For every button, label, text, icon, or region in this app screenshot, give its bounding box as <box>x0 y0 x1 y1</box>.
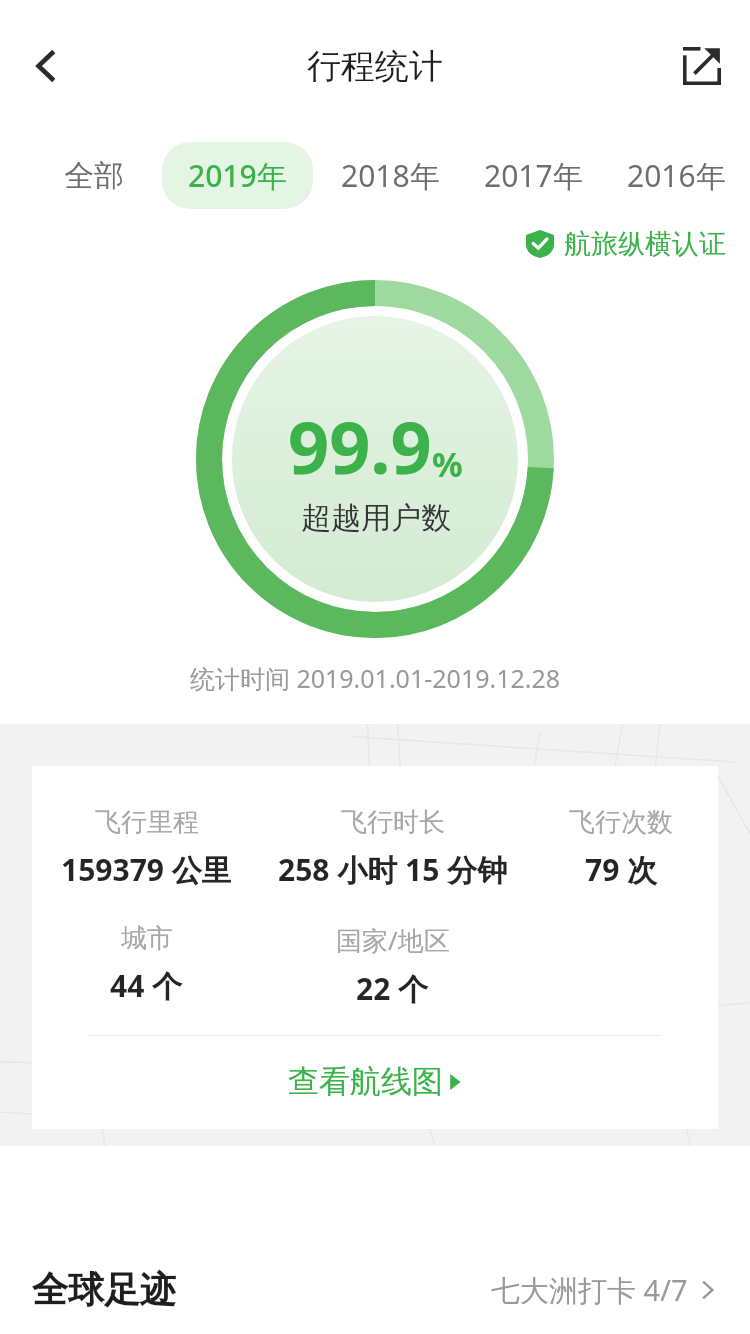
button[interactable]: 七大洲打卡 4/7 <box>491 1270 718 1310</box>
staticText: 79 次 <box>585 849 658 890</box>
staticText: 统计时间 2019.01.01-2019.12.28 <box>0 661 750 695</box>
staticText: 飞行里程 <box>95 806 199 839</box>
staticText: 44 个 <box>110 965 183 1006</box>
staticText: 飞行时长 <box>341 806 445 839</box>
staticText: 城市 <box>121 922 173 955</box>
staticText: 航旅纵横认证 <box>564 227 726 261</box>
staticText: 全球足迹 <box>32 1267 176 1312</box>
staticText: 2017年 <box>484 155 583 196</box>
staticText: 超越用户数 <box>301 499 451 537</box>
button[interactable]: Share <box>670 34 734 98</box>
button[interactable]: 2019年 <box>162 142 313 209</box>
button[interactable]: 全部 <box>60 144 128 208</box>
button[interactable]: 2017年 <box>480 142 587 209</box>
staticText: 2019年 <box>188 155 287 196</box>
staticText: 七大洲打卡 4/7 <box>491 1270 688 1310</box>
staticText: 2018年 <box>341 155 440 196</box>
staticText: % <box>432 441 463 487</box>
staticText: 159379 公里 <box>61 849 232 890</box>
staticText: 国家/地区 <box>336 922 450 958</box>
staticText: 258 小时 15 分钟 <box>278 849 508 890</box>
button[interactable]: Back <box>14 34 78 98</box>
staticText: 2016年 <box>627 155 726 196</box>
staticText: 99.9 <box>288 397 432 495</box>
staticText: 飞行次数 <box>569 806 673 839</box>
button[interactable]: 2018年 <box>337 142 444 209</box>
button[interactable]: 2016年 <box>623 142 730 209</box>
staticText: 22 个 <box>356 968 429 1009</box>
button[interactable]: 航旅纵横认证 <box>526 227 726 261</box>
button[interactable]: 查看航线图 <box>32 1062 718 1101</box>
staticText: 行程统计 <box>307 45 443 88</box>
staticText: 全部 <box>64 157 124 195</box>
staticText: 查看航线图 <box>288 1062 443 1101</box>
